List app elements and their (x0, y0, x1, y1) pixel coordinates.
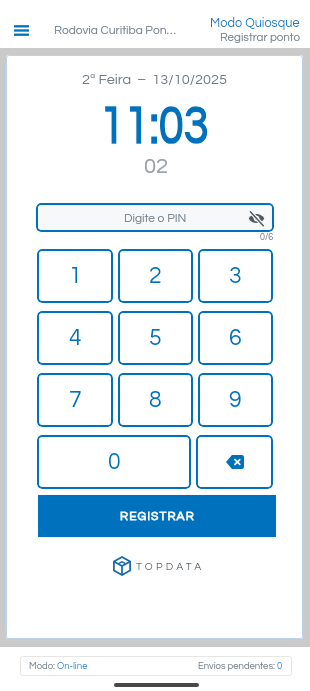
staticText: Digite o PIN (124, 212, 187, 224)
staticText: 0 (277, 661, 283, 671)
button[interactable]: Mostrar PIN (246, 208, 266, 228)
button[interactable]: Digite o PIN (36, 203, 274, 232)
staticText: REGISTRAR (120, 510, 195, 522)
staticText: Registrar ponto (220, 31, 300, 43)
button[interactable]: 7 (37, 373, 113, 427)
staticText: On-line (57, 661, 88, 671)
button[interactable]: 9 (198, 373, 273, 427)
staticText: 7 (69, 388, 82, 412)
staticText: 8 (149, 388, 162, 412)
staticText: Modo Quiosque (210, 17, 300, 30)
button[interactable]: 8 (118, 373, 193, 427)
button[interactable]: Modo: (29, 656, 283, 676)
staticText: 9 (229, 388, 242, 412)
staticText: 6 (229, 326, 242, 350)
staticText: TOPDATA (136, 561, 205, 572)
button[interactable]: REGISTRAR (38, 495, 276, 537)
staticText: 0 (108, 450, 121, 474)
staticText: 1 (69, 264, 82, 288)
staticText: 02 (144, 155, 169, 178)
button[interactable]: 3 (198, 249, 273, 303)
staticText: 4 (69, 326, 82, 350)
staticText: Modo: (29, 661, 57, 671)
staticText: 0/6 (260, 233, 274, 242)
button[interactable]: 0 (37, 435, 191, 489)
staticText: 11:03 (100, 98, 209, 155)
staticText: 2ª Feira – 13/10/2025 (82, 72, 227, 87)
button[interactable]: Menu (8, 17, 34, 43)
button[interactable]: 4 (37, 311, 113, 365)
button[interactable]: 2 (118, 249, 193, 303)
button[interactable]: 6 (198, 311, 273, 365)
button[interactable]: 5 (118, 311, 193, 365)
staticText: Envios pendentes: (198, 661, 277, 671)
staticText: Rodovia Curitiba Pon… (54, 24, 176, 36)
staticText: 3 (229, 264, 242, 288)
button[interactable]: 1 (37, 249, 113, 303)
staticText: 2 (149, 264, 162, 288)
staticText: 5 (149, 326, 162, 350)
button[interactable]: Apagar (196, 435, 273, 489)
